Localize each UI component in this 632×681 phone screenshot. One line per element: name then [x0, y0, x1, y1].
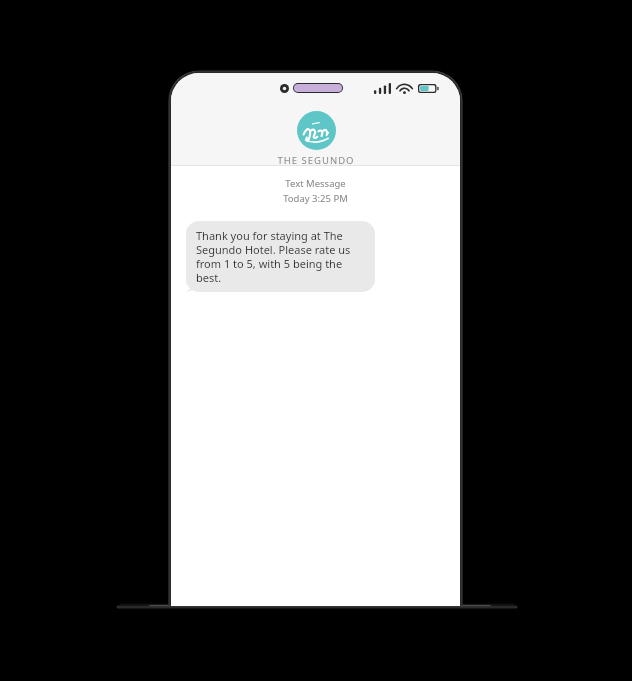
staticText: THE SEGUNDO [277, 154, 355, 167]
staticText: Thank you for staying at The Segundo Hot… [196, 228, 365, 285]
button[interactable]: The Segundo contact [277, 111, 355, 167]
button[interactable]: Thank you for staying at The Segundo Hot… [186, 221, 375, 292]
staticText: Today 3:25 PM [171, 192, 460, 205]
staticText: Text Message [171, 177, 460, 190]
